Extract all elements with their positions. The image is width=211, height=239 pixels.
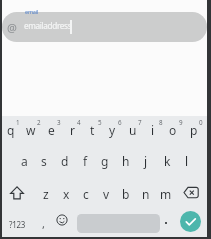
staticText: , (42, 216, 45, 231)
staticText: g (101, 153, 109, 169)
button[interactable]: c (71, 184, 101, 204)
staticText: v (103, 186, 110, 202)
staticText: e (48, 122, 55, 138)
staticText: 8 (159, 118, 163, 127)
button[interactable] (180, 211, 201, 232)
button[interactable]: l (172, 151, 202, 171)
staticText: 7 (138, 118, 142, 127)
staticText: f (83, 153, 88, 169)
button[interactable]: b (111, 184, 141, 204)
staticText: l (185, 153, 189, 169)
staticText: h (122, 153, 130, 169)
staticText: b (122, 186, 130, 202)
staticText: n (142, 186, 150, 202)
staticText: 3 (57, 118, 61, 127)
button[interactable]: t (77, 120, 107, 140)
button[interactable]: z (31, 184, 61, 204)
button[interactable]: g (90, 151, 120, 171)
staticText: 5 (98, 118, 102, 127)
button[interactable]: e (36, 120, 66, 140)
staticText: 9 (179, 118, 183, 127)
button[interactable]: j (131, 151, 161, 171)
staticText: q (7, 122, 15, 138)
button[interactable]: n (131, 184, 161, 204)
staticText: i (151, 122, 155, 138)
staticText: c (83, 186, 89, 202)
staticText: o (169, 122, 177, 138)
staticText: w (26, 122, 36, 138)
staticText: m (160, 186, 172, 202)
button[interactable] (2, 12, 207, 42)
button[interactable]: ?123 (2, 214, 32, 234)
button[interactable]: , (28, 213, 58, 233)
staticText: 0 (199, 118, 203, 127)
staticText: emailaddress (24, 20, 72, 31)
staticText: p (190, 122, 198, 138)
button[interactable] (51, 209, 73, 231)
staticText: d (61, 153, 69, 169)
staticText: x (63, 186, 70, 202)
button[interactable]: y (97, 120, 127, 140)
button[interactable] (180, 182, 202, 204)
staticText: ?123 (9, 219, 25, 230)
staticText: 2 (37, 118, 41, 127)
button[interactable]: o (158, 120, 188, 140)
button[interactable]: r (57, 120, 87, 140)
staticText: 4 (77, 118, 81, 127)
staticText: a (21, 153, 28, 169)
staticText: u (129, 122, 137, 138)
button[interactable]: w (16, 120, 46, 140)
button[interactable]: d (50, 151, 80, 171)
staticText: 1 (16, 118, 20, 127)
button[interactable]: s (29, 151, 59, 171)
button[interactable]: f (70, 151, 100, 171)
button[interactable]: u (118, 120, 148, 140)
staticText: r (70, 122, 75, 138)
button[interactable]: q (0, 120, 26, 140)
button[interactable] (6, 182, 28, 204)
button[interactable]: i (138, 120, 168, 140)
staticText: s (41, 153, 47, 169)
staticText: email (25, 8, 39, 15)
button[interactable]: x (51, 184, 81, 204)
staticText: @ (7, 20, 17, 35)
staticText: y (109, 122, 116, 138)
staticText: t (90, 122, 95, 138)
staticText: z (43, 186, 49, 202)
button[interactable]: v (91, 184, 121, 204)
staticText: j (144, 153, 148, 169)
button[interactable]: k (152, 151, 182, 171)
button[interactable]: a (9, 151, 39, 171)
button[interactable]: h (111, 151, 141, 171)
button[interactable]: m (151, 184, 181, 204)
staticText: 6 (118, 118, 122, 127)
button[interactable]: p (179, 120, 209, 140)
staticText: k (164, 153, 171, 169)
